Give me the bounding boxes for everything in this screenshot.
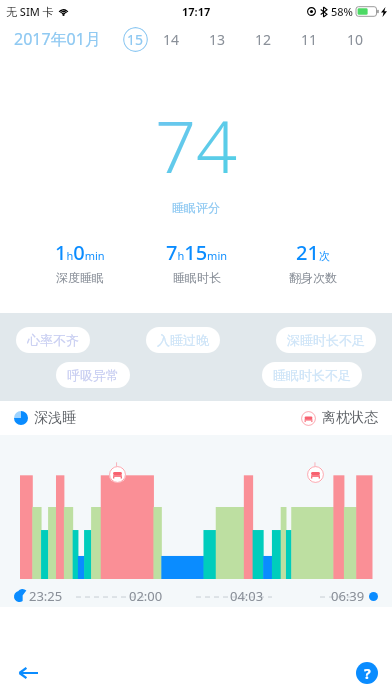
staticText: 心率不齐 — [27, 332, 79, 348]
button[interactable]: 12 — [240, 26, 286, 52]
button[interactable]: 呼吸异常 — [56, 362, 130, 388]
staticText: 21次 — [296, 239, 330, 266]
staticText: 7h15min — [166, 239, 228, 266]
staticText: 04:03 — [230, 587, 264, 605]
staticText: 呼吸异常 — [67, 367, 119, 383]
button[interactable]: 11 — [286, 26, 332, 52]
staticText: 入睡过晚 — [157, 332, 209, 348]
button[interactable]: 入睡过晚 — [146, 327, 220, 353]
staticText: 1h0min — [55, 239, 105, 266]
button[interactable]: 1h0min — [49, 237, 111, 287]
staticText: 74 — [155, 96, 238, 194]
button[interactable]: 心率不齐 — [16, 327, 90, 353]
button[interactable]: 21次 — [283, 237, 343, 287]
staticText: 深度睡眠 — [56, 270, 104, 285]
staticText: 02:00 — [129, 587, 163, 605]
staticText: 11 — [301, 30, 318, 49]
staticText: 13 — [209, 30, 226, 49]
staticText: 睡眠时长不足 — [273, 367, 351, 383]
button[interactable]: 10 — [332, 26, 378, 52]
button[interactable]: 2017年01月 — [0, 28, 107, 50]
staticText: 离枕状态 — [322, 409, 378, 427]
staticText: 深浅睡 — [34, 409, 76, 427]
button[interactable]: 15 — [123, 27, 148, 52]
staticText: ? — [364, 664, 371, 683]
button[interactable]: 7h15min — [160, 237, 234, 287]
other: 离枕状态标记 — [109, 466, 126, 483]
staticText: 14 — [163, 30, 180, 49]
staticText: 23:25 — [29, 587, 63, 605]
button[interactable]: 睡眠时长不足 — [262, 362, 362, 388]
button[interactable]: 深睡时长不足 — [276, 327, 376, 353]
staticText: 翻身次数 — [289, 270, 337, 285]
staticText: 17:17 — [182, 4, 211, 19]
button[interactable]: 13 — [194, 26, 240, 52]
staticText: 无 SIM 卡 — [6, 4, 54, 19]
staticText: 12 — [255, 30, 272, 49]
staticText: 15 — [127, 30, 144, 49]
button[interactable]: 14 — [148, 26, 194, 52]
staticText: 2017年01月 — [14, 28, 101, 50]
other: 离枕状态标记 — [307, 466, 324, 483]
staticText: 06:39 — [331, 587, 365, 605]
button[interactable]: 帮助 — [356, 662, 378, 684]
staticText: 10 — [347, 30, 364, 49]
button[interactable]: 离枕状态 — [301, 409, 378, 427]
button[interactable]: 深浅睡 — [14, 409, 76, 427]
staticText: 58% — [331, 4, 353, 19]
staticText: 睡眠时长 — [173, 270, 221, 285]
staticText: 睡眠评分 — [172, 200, 220, 215]
button[interactable]: 返回 — [10, 655, 46, 691]
staticText: 深睡时长不足 — [287, 332, 365, 348]
